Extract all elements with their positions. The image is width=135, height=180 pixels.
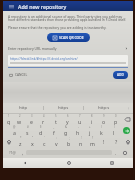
button[interactable]: 8 <box>86 114 97 125</box>
button[interactable]: . <box>112 147 119 158</box>
button[interactable]: ( <box>96 125 107 136</box>
staticText: v <box>55 140 58 147</box>
staticText: r <box>42 118 45 125</box>
staticText: u <box>78 118 82 125</box>
staticText: ! <box>103 138 105 145</box>
button[interactable]: ? <box>112 136 120 147</box>
button[interactable]: - <box>72 125 83 136</box>
staticText: * <box>20 136 22 140</box>
staticText: @ <box>13 125 16 129</box>
staticText: n <box>79 140 83 147</box>
staticText: y <box>66 118 69 125</box>
staticText: 0 <box>115 114 117 118</box>
button[interactable]: ! <box>100 136 108 147</box>
button[interactable]: $ <box>35 125 46 136</box>
button[interactable]: " <box>27 136 38 147</box>
staticText: c <box>43 140 46 147</box>
button[interactable]: 0 <box>110 114 121 125</box>
button[interactable]: Recent apps <box>90 158 133 168</box>
staticText: 6 <box>67 114 69 118</box>
button[interactable]: _ <box>48 125 59 136</box>
button[interactable]: Backspace <box>121 114 133 125</box>
staticText: q <box>7 118 11 125</box>
button[interactable]: ?1@ <box>5 147 19 158</box>
staticText: l <box>113 129 115 136</box>
staticText: 7 <box>79 114 81 118</box>
button[interactable]: @ <box>9 125 20 136</box>
staticText: + <box>89 125 91 129</box>
button[interactable]: SCAN QR CODE <box>47 33 90 42</box>
button[interactable]: https://fdroid.link/#https://f-droid.org… <box>8 55 128 66</box>
staticText: ? <box>92 136 94 140</box>
staticText: https <box>58 105 69 111</box>
button[interactable]: ) <box>108 125 119 136</box>
button[interactable]: Enter <box>119 125 133 136</box>
button[interactable]: https <box>44 103 83 113</box>
staticText: i <box>91 118 93 125</box>
staticText: http <box>19 105 28 111</box>
staticText: Add new repository <box>18 3 67 10</box>
staticText: k <box>100 129 103 136</box>
staticText: x <box>31 140 34 147</box>
button[interactable]: Enter repository URL manually <box>8 46 128 51</box>
staticText: o <box>102 118 106 125</box>
button[interactable]: Shift <box>122 136 133 147</box>
staticText: ? <box>115 138 118 145</box>
button[interactable]: 2 <box>14 114 25 125</box>
staticText: SCAN QR CODE <box>59 35 84 40</box>
staticText: 8 <box>91 114 93 118</box>
button[interactable]: 9 <box>98 114 109 125</box>
staticText: A repository is an additional source of … <box>8 14 128 22</box>
button[interactable]: 5 <box>50 114 61 125</box>
button[interactable]: CANCEL <box>8 72 29 78</box>
button[interactable]: & <box>60 125 71 136</box>
staticText: h <box>76 129 80 136</box>
button[interactable]: http:s <box>84 103 123 113</box>
staticText: d <box>39 129 43 136</box>
button[interactable]: 4 <box>38 114 49 125</box>
staticText: ; <box>69 136 70 140</box>
staticText: j <box>89 129 91 136</box>
staticText: e <box>30 118 33 125</box>
button[interactable]: Back <box>3 158 47 168</box>
button[interactable]: , <box>19 147 26 158</box>
button[interactable]: ! <box>75 136 86 147</box>
staticText: # <box>27 125 29 129</box>
button[interactable]: Home <box>47 158 90 168</box>
button[interactable]: Shift <box>3 136 14 147</box>
button[interactable]: 1 <box>3 114 14 125</box>
button[interactable]: ? <box>87 136 98 147</box>
staticText: https://fdroid.link/#https://f-droid.org… <box>10 57 78 61</box>
button[interactable]: ; <box>63 136 74 147</box>
staticText: - <box>78 125 79 129</box>
staticText: 5 <box>55 114 57 118</box>
staticText: 3 <box>31 114 33 118</box>
button[interactable]: 7 <box>74 114 85 125</box>
button[interactable]: http <box>3 103 43 113</box>
button[interactable]: ADD <box>113 71 128 79</box>
staticText: 9 <box>103 114 105 118</box>
staticText: ) <box>114 125 115 129</box>
button[interactable]: Navigate up <box>7 2 15 10</box>
staticText: CANCEL <box>15 73 28 77</box>
staticText: g <box>64 129 68 136</box>
staticText: $ <box>40 125 42 129</box>
button[interactable]: ' <box>39 136 50 147</box>
staticText: t <box>55 118 57 125</box>
button[interactable]: 6 <box>62 114 73 125</box>
staticText: ADD <box>117 73 124 77</box>
button[interactable]: * <box>15 136 26 147</box>
staticText: " <box>32 136 34 140</box>
button[interactable]: + <box>84 125 95 136</box>
button[interactable]: # <box>22 125 33 136</box>
staticText: ! <box>81 136 82 140</box>
staticText: s <box>26 129 29 136</box>
staticText: 4 <box>43 114 45 118</box>
staticText: 2 <box>19 114 21 118</box>
button[interactable]: 3 <box>26 114 37 125</box>
staticText: f <box>53 129 55 136</box>
button[interactable]: : <box>51 136 62 147</box>
button[interactable]: Emoji <box>119 147 131 158</box>
